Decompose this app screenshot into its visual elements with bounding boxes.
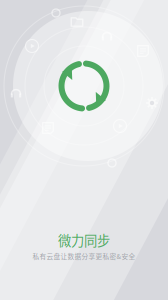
staticText: 私有云盘让数据分享更私密&安全 (32, 251, 135, 261)
staticText: 微力同步 (58, 230, 110, 250)
